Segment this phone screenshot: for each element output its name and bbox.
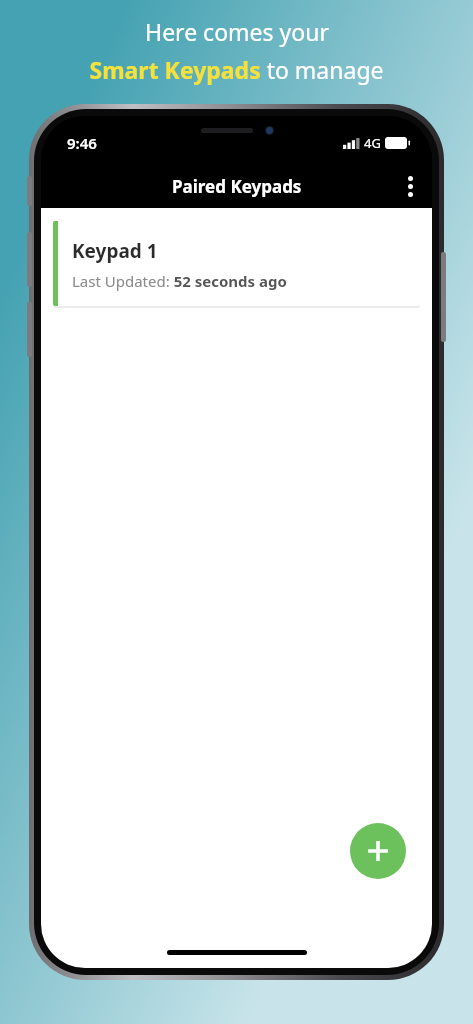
button[interactable]: Keypad 1: [53, 221, 420, 306]
staticText: Last Updated: 52 seconds ago: [72, 271, 287, 291]
staticText: 4G: [364, 134, 381, 152]
staticText: Here comes your: [145, 16, 329, 47]
staticText: Keypad 1: [72, 238, 158, 264]
staticText: 9:46: [67, 133, 97, 153]
staticText: Paired Keypads: [172, 175, 302, 198]
button[interactable]: Add keypad: [350, 823, 406, 879]
staticText: Smart Keypads to manage: [89, 54, 384, 85]
button[interactable]: More options: [388, 164, 432, 208]
